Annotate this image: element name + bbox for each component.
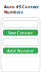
button[interactable]: Add Number	[3, 48, 38, 54]
staticText: Numbers	[4, 9, 23, 15]
staticText: Save Contact	[8, 30, 33, 35]
staticText: Auto #5 Contact	[4, 4, 39, 9]
staticText: Add Number	[7, 48, 34, 53]
button[interactable]: Save Contact	[3, 30, 38, 36]
